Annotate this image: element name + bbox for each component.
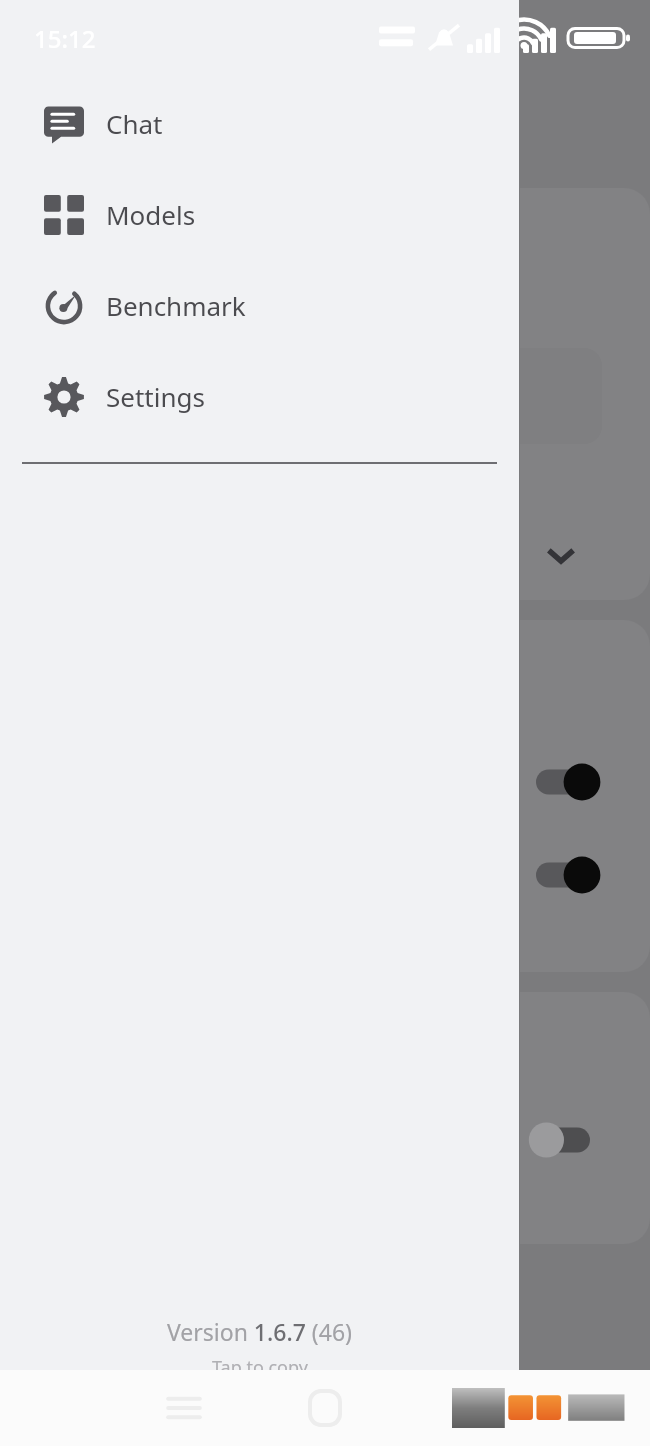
button[interactable]: Models (0, 169, 519, 260)
staticText: Version 1.6.7 (46) (167, 1316, 352, 1347)
staticText: Chat (106, 106, 163, 141)
staticText: Benchmark (106, 288, 246, 323)
button[interactable]: Benchmark (0, 260, 519, 351)
button[interactable]: Switch on (536, 855, 598, 895)
button[interactable]: Switch on (536, 762, 598, 802)
button[interactable]: Settings (0, 351, 519, 442)
button[interactable]: Version 1.6.7 (46) (0, 1316, 519, 1380)
staticText: Settings (106, 379, 205, 414)
button[interactable]: Home (293, 1376, 357, 1440)
other: Expand (542, 536, 580, 574)
button[interactable]: Chat (0, 78, 519, 169)
staticText: Models (106, 197, 196, 232)
staticText: 15:12 (34, 22, 96, 55)
button[interactable]: Menu (152, 1376, 216, 1440)
staticText: Tap to copy (212, 1355, 308, 1380)
button[interactable]: Switch off (528, 1120, 590, 1160)
